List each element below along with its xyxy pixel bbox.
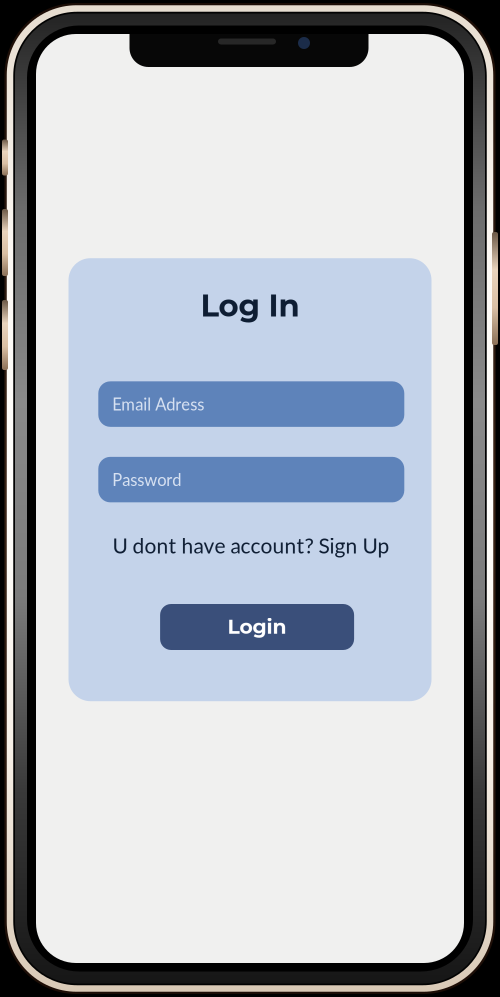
staticText: Login <box>228 614 287 639</box>
staticText: Email Adress <box>112 394 204 414</box>
button[interactable]: Login <box>160 604 354 650</box>
staticText: Log In <box>200 287 299 324</box>
button[interactable]: Password <box>98 457 404 502</box>
staticText: Password <box>112 470 181 489</box>
button[interactable]: Email Adress <box>98 381 404 427</box>
button[interactable]: U dont have account? Sign Up <box>106 528 395 563</box>
staticText: U dont have account? Sign Up <box>112 533 389 558</box>
